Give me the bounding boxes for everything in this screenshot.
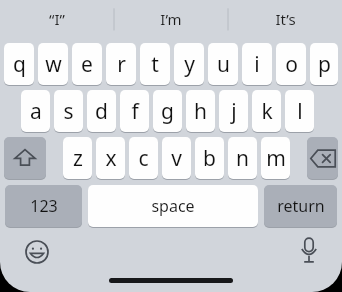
button[interactable] <box>4 137 46 179</box>
button[interactable]: y <box>174 43 204 85</box>
other: Shift <box>4 137 46 179</box>
button[interactable]: d <box>87 90 116 132</box>
staticText: l <box>297 97 303 126</box>
button[interactable] <box>307 137 338 179</box>
staticText: j <box>231 97 237 126</box>
staticText: space <box>151 195 195 217</box>
staticText: a <box>30 97 42 126</box>
staticText: b <box>203 144 216 173</box>
button[interactable]: o <box>276 43 306 85</box>
staticText: y <box>184 50 195 79</box>
staticText: r <box>117 50 126 79</box>
button[interactable]: i <box>242 43 272 85</box>
button[interactable]: z <box>63 137 92 179</box>
button[interactable]: Emoji keyboard <box>18 233 56 271</box>
button[interactable]: e <box>72 43 102 85</box>
button[interactable]: space <box>88 185 258 227</box>
button[interactable]: q <box>4 43 34 85</box>
button[interactable]: w <box>38 43 68 85</box>
button[interactable]: b <box>195 137 224 179</box>
other: Backspace <box>307 137 338 179</box>
staticText: u <box>217 50 230 79</box>
button[interactable]: Dictation <box>290 231 328 269</box>
button[interactable]: v <box>162 137 191 179</box>
button[interactable]: g <box>153 90 182 132</box>
staticText: “I” <box>49 9 65 29</box>
staticText: n <box>236 144 249 173</box>
staticText: h <box>194 97 207 126</box>
staticText: f <box>131 97 139 126</box>
button[interactable]: m <box>261 137 290 179</box>
staticText: g <box>161 97 174 126</box>
staticText: s <box>63 97 74 126</box>
staticText: It’s <box>275 9 296 29</box>
staticText: t <box>151 50 159 79</box>
button[interactable]: h <box>186 90 215 132</box>
button[interactable]: n <box>228 137 257 179</box>
button[interactable]: r <box>106 43 136 85</box>
staticText: w <box>45 50 62 79</box>
staticText: k <box>261 97 273 126</box>
staticText: p <box>318 50 331 79</box>
staticText: o <box>285 50 298 79</box>
button[interactable]: return <box>264 185 337 227</box>
button[interactable]: f <box>120 90 149 132</box>
staticText: q <box>13 50 26 79</box>
button[interactable]: 123 <box>5 185 82 227</box>
button[interactable]: p <box>310 43 338 85</box>
button[interactable]: s <box>54 90 83 132</box>
button[interactable]: k <box>252 90 281 132</box>
button[interactable]: t <box>140 43 170 85</box>
button[interactable]: “I” <box>0 0 114 38</box>
staticText: e <box>81 50 93 79</box>
staticText: i <box>254 50 260 79</box>
button[interactable]: u <box>208 43 238 85</box>
button[interactable]: It’s <box>228 0 342 38</box>
staticText: v <box>171 144 182 173</box>
button[interactable]: j <box>219 90 248 132</box>
staticText: x <box>105 144 117 173</box>
button[interactable]: I’m <box>114 0 228 38</box>
staticText: d <box>95 97 108 126</box>
staticText: 123 <box>30 195 58 217</box>
staticText: I’m <box>160 9 182 29</box>
button[interactable]: l <box>285 90 314 132</box>
button[interactable]: a <box>21 90 50 132</box>
staticText: z <box>73 144 83 173</box>
staticText: c <box>138 144 149 173</box>
button[interactable]: c <box>129 137 158 179</box>
staticText: return <box>277 195 325 217</box>
staticText: m <box>266 144 286 173</box>
button[interactable]: x <box>96 137 125 179</box>
